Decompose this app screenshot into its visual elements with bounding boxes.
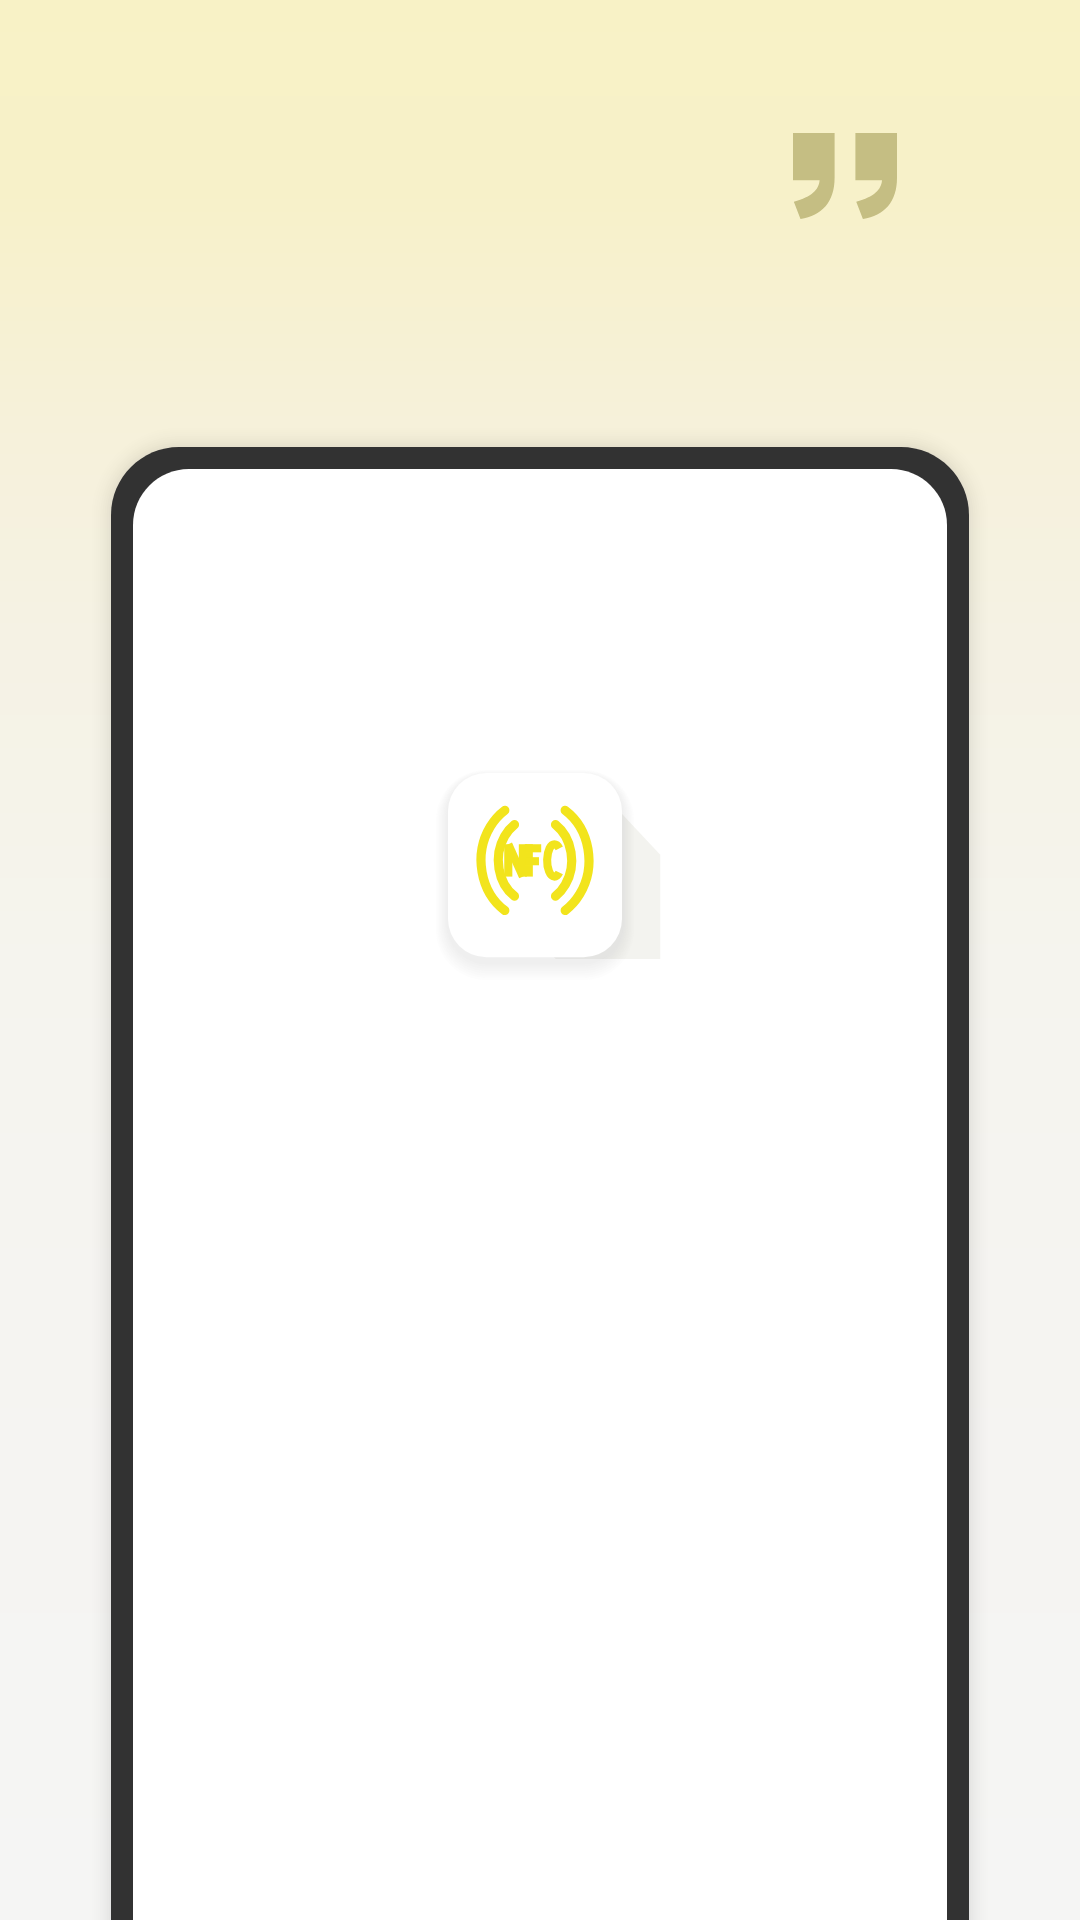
button[interactable]: NFC <box>448 773 622 959</box>
